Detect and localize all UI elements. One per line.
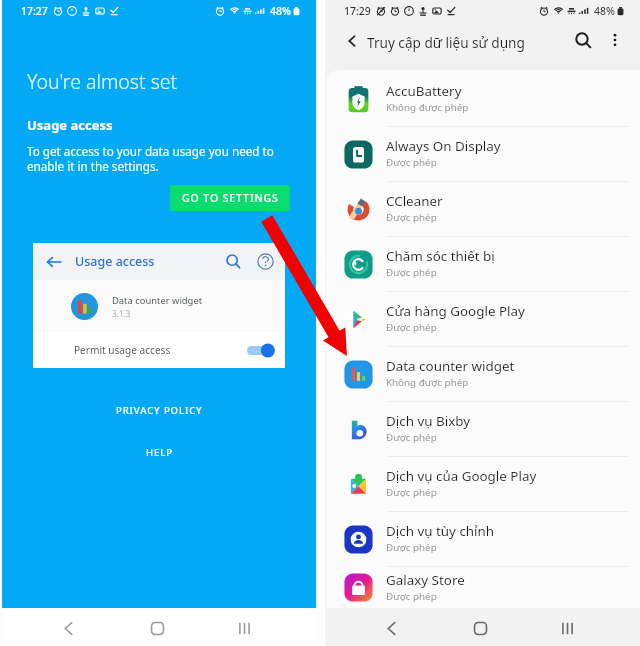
staticText: Cửa hàng Google Play <box>386 302 525 320</box>
staticText: Dịch vụ tùy chỉnh <box>386 522 495 540</box>
staticText: Usage access <box>27 116 113 134</box>
button[interactable]: Dịch vụ tùy chỉnh <box>326 512 640 567</box>
button[interactable]: More options <box>607 32 623 48</box>
button[interactable]: HELP <box>134 440 185 465</box>
button[interactable]: Recents <box>554 615 581 642</box>
staticText: Data counter widget <box>112 294 203 307</box>
button[interactable]: Back <box>378 615 405 642</box>
staticText: Được phép <box>386 431 437 444</box>
button[interactable]: Back <box>55 615 82 642</box>
staticText: 17:27 <box>21 4 48 18</box>
button[interactable]: Search <box>225 253 242 270</box>
staticText: Được phép <box>386 590 437 603</box>
staticText: Truy cập dữ liệu sử dụng <box>367 33 525 52</box>
staticText: Được phép <box>386 266 437 279</box>
button[interactable]: Cửa hàng Google Play <box>326 292 640 347</box>
staticText: 48% <box>270 4 291 18</box>
button[interactable]: Data counter widget <box>326 347 640 402</box>
button[interactable]: PRIVACY POLICY <box>104 398 215 423</box>
button[interactable]: Dịch vụ của Google Play <box>326 457 640 512</box>
button[interactable]: CCleaner <box>326 182 640 237</box>
staticText: 3.1.3 <box>112 308 131 319</box>
button[interactable]: GO TO SETTINGS <box>170 185 290 211</box>
staticText: You're almost set <box>27 68 178 95</box>
staticText: Không được phép <box>386 101 469 114</box>
staticText: Được phép <box>386 541 437 554</box>
staticText: CCleaner <box>386 192 443 210</box>
staticText: Được phép <box>386 321 437 334</box>
staticText: Dịch vụ của Google Play <box>386 467 537 485</box>
staticText: Galaxy Store <box>386 571 465 589</box>
button[interactable]: Dịch vụ Bixby <box>326 402 640 457</box>
staticText: Không được phép <box>386 376 469 389</box>
staticText: 17:29 <box>344 4 371 18</box>
staticText: Always On Display <box>386 137 501 155</box>
button[interactable]: AccuBattery <box>326 72 640 127</box>
staticText: Permit usage access <box>74 343 171 357</box>
staticText: Được phép <box>386 156 437 169</box>
staticText: Được phép <box>386 486 437 499</box>
staticText: Dịch vụ Bixby <box>386 412 471 430</box>
button[interactable]: Back <box>44 252 64 272</box>
staticText: AccuBattery <box>386 82 462 100</box>
staticText: 48% <box>594 4 615 18</box>
button[interactable]: Chăm sóc thiết bị <box>326 237 640 292</box>
staticText: Được phép <box>386 211 437 224</box>
button[interactable]: Search <box>574 31 593 50</box>
staticText: GO TO SETTINGS <box>182 191 279 205</box>
button[interactable]: Home <box>144 615 171 642</box>
staticText: Usage access <box>75 253 155 270</box>
button[interactable]: Galaxy Store <box>326 567 640 608</box>
button[interactable]: Recents <box>231 615 258 642</box>
staticText: Chăm sóc thiết bị <box>386 247 495 265</box>
button[interactable]: Home <box>467 615 494 642</box>
staticText: Data counter widget <box>386 357 515 375</box>
button[interactable]: Help <box>257 253 274 270</box>
staticText: To get access to your data usage you nee… <box>27 143 274 174</box>
button[interactable]: Permit usage access <box>33 332 285 368</box>
button[interactable]: Back <box>341 30 363 52</box>
button[interactable]: Always On Display <box>326 127 640 182</box>
